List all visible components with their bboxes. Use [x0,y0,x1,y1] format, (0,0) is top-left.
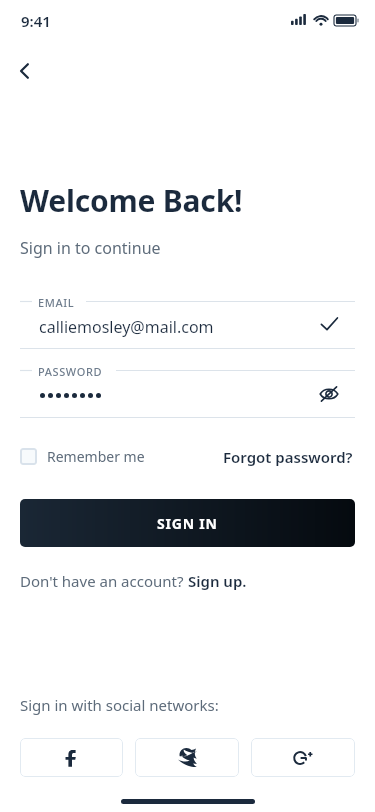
button[interactable]: Sign up. [188,571,247,591]
staticText: Remember me [47,447,145,466]
button[interactable]: Back [8,54,42,88]
staticText: SIGN IN [157,514,218,533]
staticText: Forgot password? [223,447,353,467]
staticText: Welcome Back! [20,180,243,221]
staticText: 9:41 [21,11,51,31]
button[interactable]: Show password [20,371,355,417]
button[interactable]: Sign in with Facebook [20,738,123,777]
staticText: Sign in with social networks: [20,695,219,715]
staticText: calliemosley@mail.com [39,316,214,338]
button[interactable]: Sign in with Google Plus [251,738,355,777]
button[interactable]: Show password [313,378,345,410]
button[interactable]: SIGN IN [20,499,355,547]
staticText: Don't have an account? [20,571,188,591]
button[interactable]: Forgot password? [216,441,360,473]
button[interactable]: Remember me [14,441,151,472]
button[interactable]: calliemosley@mail.com [20,302,355,348]
button[interactable]: Sign in with Twitter [135,738,239,777]
staticText: EMAIL [38,295,75,310]
staticText: Sign in to continue [20,237,161,259]
staticText: Sign up. [188,571,247,591]
staticText: PASSWORD [38,364,103,379]
